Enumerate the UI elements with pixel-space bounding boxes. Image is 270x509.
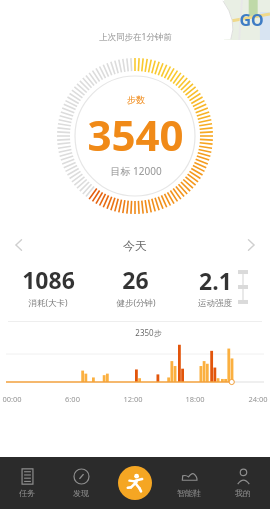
button[interactable]: 1086	[4, 264, 92, 309]
staticText: 2350步	[135, 327, 162, 338]
staticText: GO	[239, 9, 264, 31]
staticText: 00:00	[2, 394, 22, 404]
staticText: 18:00	[185, 394, 205, 404]
staticText: 步数	[127, 94, 145, 105]
button[interactable]: 发现	[54, 457, 108, 509]
staticText: 我的	[235, 488, 251, 498]
button[interactable]: 智能鞋	[162, 457, 216, 509]
staticText: 目标 12000	[110, 164, 162, 178]
staticText: 今天	[123, 238, 147, 253]
staticText: 6:00	[65, 394, 80, 404]
staticText: 健步(分钟)	[116, 297, 156, 309]
button[interactable]: GO map	[214, 0, 270, 40]
staticText: 1086	[22, 264, 75, 295]
button[interactable]: 我的	[216, 457, 270, 509]
button[interactable]: 2350步	[0, 326, 270, 404]
button[interactable]: 26	[92, 264, 179, 309]
staticText: 26	[122, 264, 149, 295]
staticText: 3540	[87, 106, 184, 163]
button[interactable]: 任务	[0, 457, 54, 509]
staticText: 2.1	[199, 265, 232, 296]
button[interactable]: Start run	[118, 466, 152, 500]
button[interactable]: Next day	[238, 232, 264, 258]
staticText: 智能鞋	[177, 488, 201, 498]
staticText: 消耗(大卡)	[28, 297, 68, 309]
staticText: 任务	[19, 488, 35, 498]
button[interactable]: Previous day	[6, 232, 32, 258]
staticText: 运动强度	[198, 298, 232, 309]
staticText: 发现	[73, 488, 89, 498]
staticText: 24:00	[248, 394, 268, 404]
staticText: 12:00	[123, 394, 143, 404]
staticText: 上次同步在1分钟前	[99, 31, 172, 43]
button[interactable]: 步数	[55, 56, 215, 216]
